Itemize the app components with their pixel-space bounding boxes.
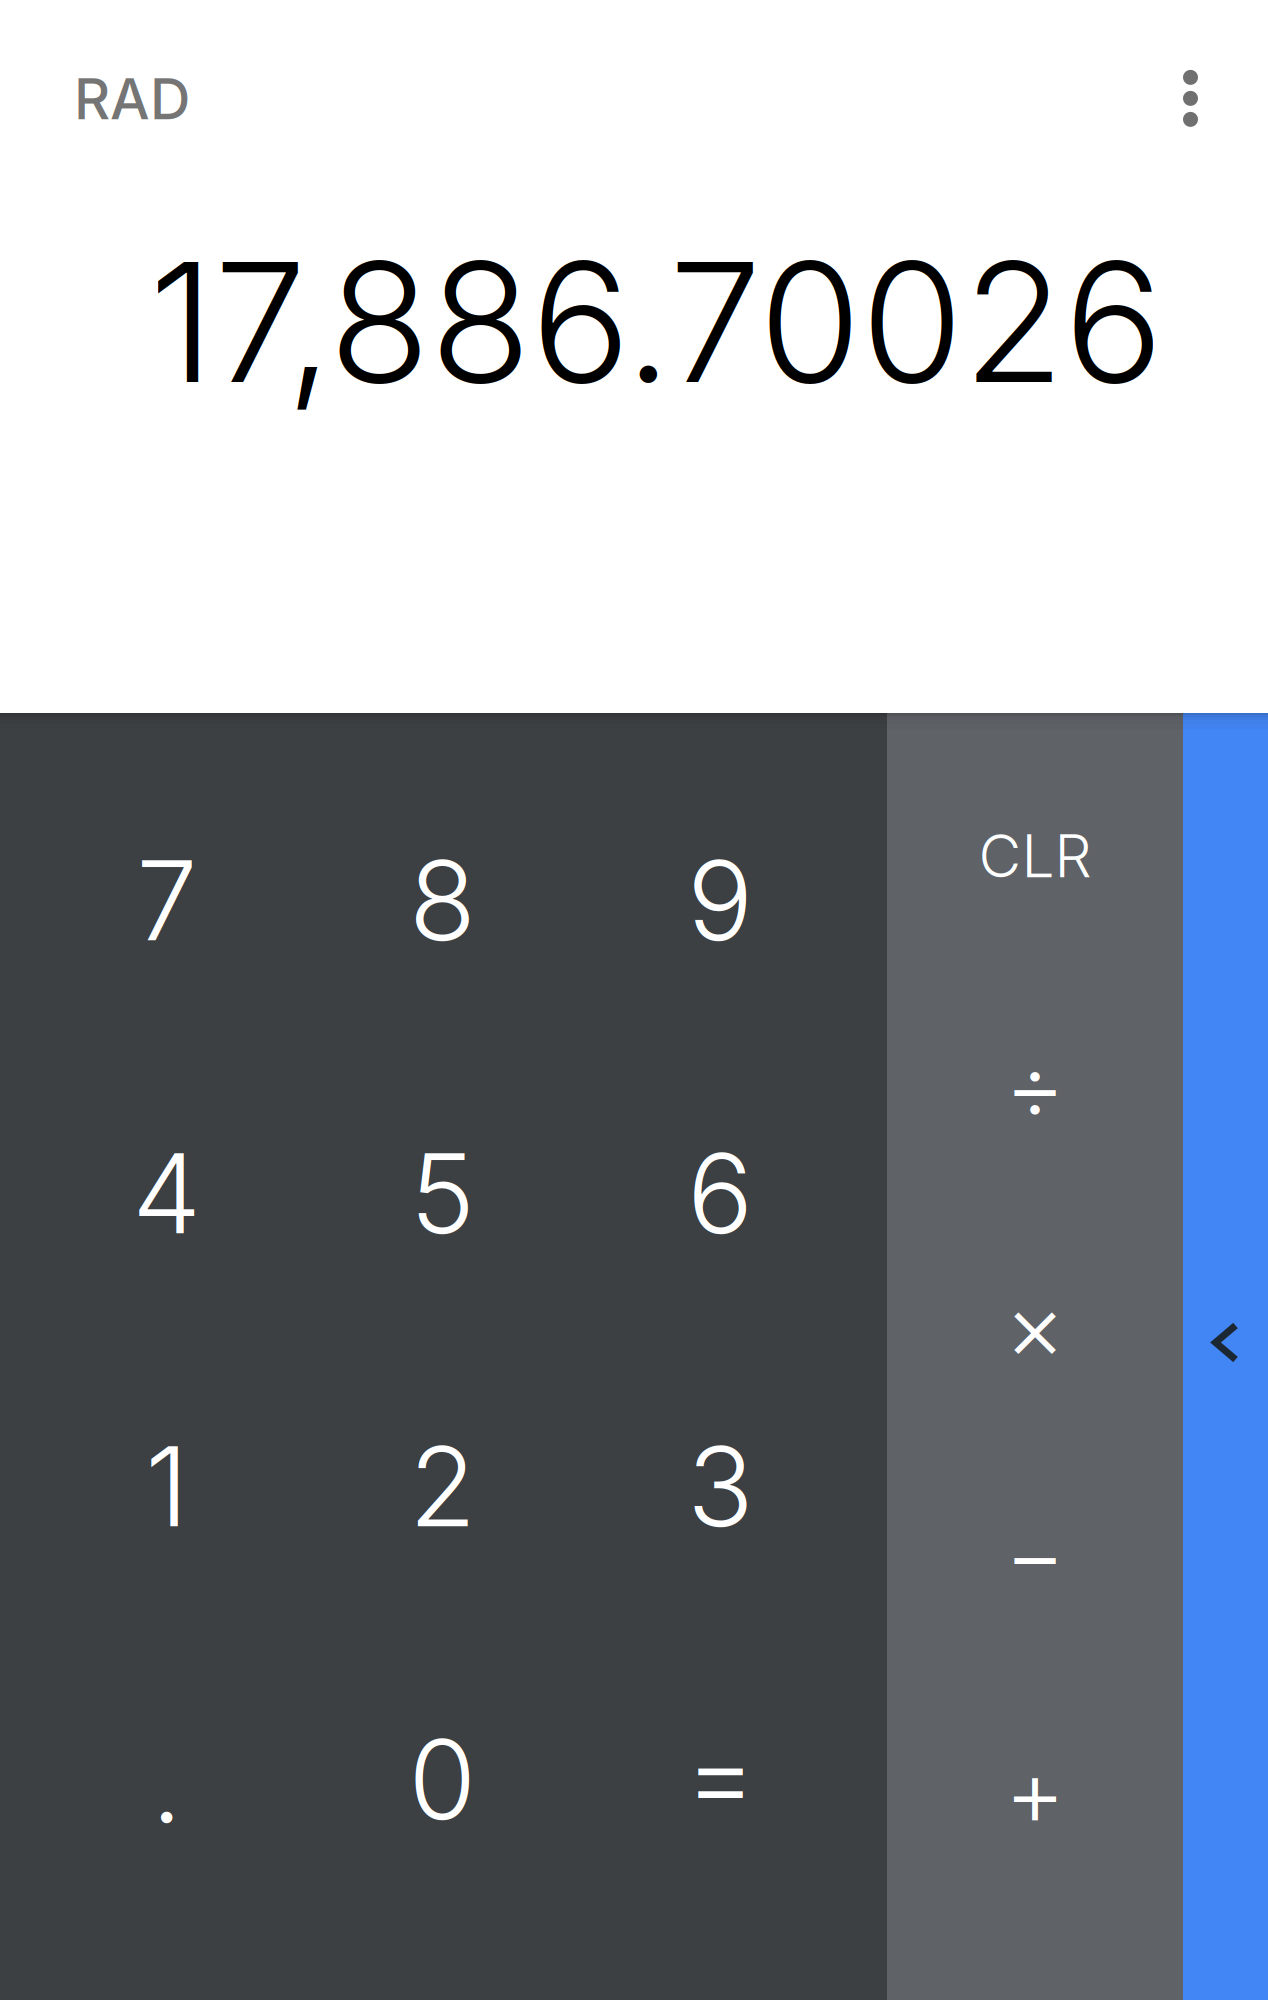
button[interactable]: 6 (591, 1047, 887, 1340)
staticText: × (1004, 1269, 1065, 1382)
staticText: + (1004, 1735, 1065, 1848)
staticText: 6 (687, 1127, 753, 1260)
staticText: 0 (408, 1713, 476, 1846)
staticText: 2 (409, 1420, 476, 1553)
staticText: 8 (409, 834, 476, 967)
button[interactable]: . (0, 1633, 296, 1926)
button[interactable]: CLR (887, 738, 1183, 974)
button[interactable]: 3 (591, 1340, 887, 1633)
button[interactable]: − (887, 1446, 1183, 1682)
staticText: 17,886.70026 (149, 222, 1163, 422)
staticText: 7 (136, 834, 197, 967)
button[interactable]: × (887, 1210, 1183, 1446)
staticText: ÷ (1004, 1029, 1065, 1142)
staticText: 4 (132, 1127, 201, 1260)
staticText: − (1004, 1497, 1065, 1610)
button[interactable]: 7 (0, 754, 296, 1047)
button[interactable]: 8 (296, 754, 591, 1047)
button[interactable]: + (887, 1682, 1183, 1918)
button[interactable]: = (591, 1633, 887, 1926)
staticText: RAD (74, 65, 190, 133)
button[interactable]: ÷ (887, 974, 1183, 1210)
button[interactable]: More options (1139, 3, 1268, 170)
button[interactable]: 0 (296, 1633, 591, 1926)
button[interactable]: RAD (0, 0, 231, 173)
button[interactable]: 9 (591, 754, 887, 1047)
button[interactable]: 5 (296, 1047, 591, 1340)
staticText: 5 (410, 1127, 475, 1260)
staticText: 1 (145, 1420, 188, 1553)
staticText: CLR (978, 820, 1091, 891)
staticText: = (685, 1708, 756, 1841)
staticText: 9 (687, 834, 753, 967)
button[interactable]: 2 (296, 1340, 591, 1633)
staticText: . (151, 1716, 182, 1849)
button[interactable]: 4 (0, 1047, 296, 1340)
staticText: 3 (687, 1420, 753, 1553)
button[interactable]: Show advanced keypad (1183, 713, 1268, 2000)
button[interactable]: 1 (0, 1340, 296, 1633)
